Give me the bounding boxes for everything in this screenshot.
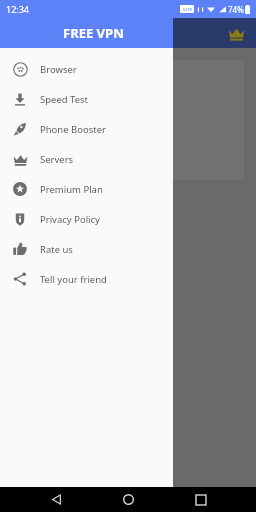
button[interactable]: Servers <box>0 144 173 174</box>
button[interactable]: Privacy Policy <box>0 204 173 234</box>
staticText: Rate us <box>40 243 73 256</box>
button[interactable]: Recents <box>184 487 218 512</box>
button[interactable]: Rate us <box>0 234 173 264</box>
staticText: 12:34 <box>6 3 30 15</box>
button[interactable]: Speed Test <box>0 84 173 114</box>
staticText: VLTE <box>183 7 192 12</box>
staticText: Speed Test <box>40 93 89 106</box>
button[interactable]: Browser <box>0 54 173 84</box>
staticText: Choose Country <box>0 238 60 252</box>
button[interactable]: Home <box>111 487 145 512</box>
staticText: Phone Booster <box>40 123 106 136</box>
staticText: Tell your friend <box>40 273 107 286</box>
button[interactable]: Tell your friend <box>0 264 173 294</box>
button[interactable]: Phone Booster <box>0 114 173 144</box>
staticText: Browser <box>40 63 77 76</box>
staticText: FREE VPN <box>63 24 124 42</box>
button[interactable]: Open <box>2 268 52 288</box>
staticText: Premium Plan <box>40 183 103 196</box>
button[interactable]: Premium Plan <box>0 174 173 204</box>
staticText: Watching Video <box>0 161 74 175</box>
staticText: Open <box>15 272 39 284</box>
staticText: Servers <box>40 153 74 166</box>
staticText: 74% <box>228 4 244 15</box>
button[interactable]: Premium <box>224 21 248 45</box>
staticText: Privacy Policy <box>40 213 100 226</box>
button[interactable]: Back <box>39 487 73 512</box>
